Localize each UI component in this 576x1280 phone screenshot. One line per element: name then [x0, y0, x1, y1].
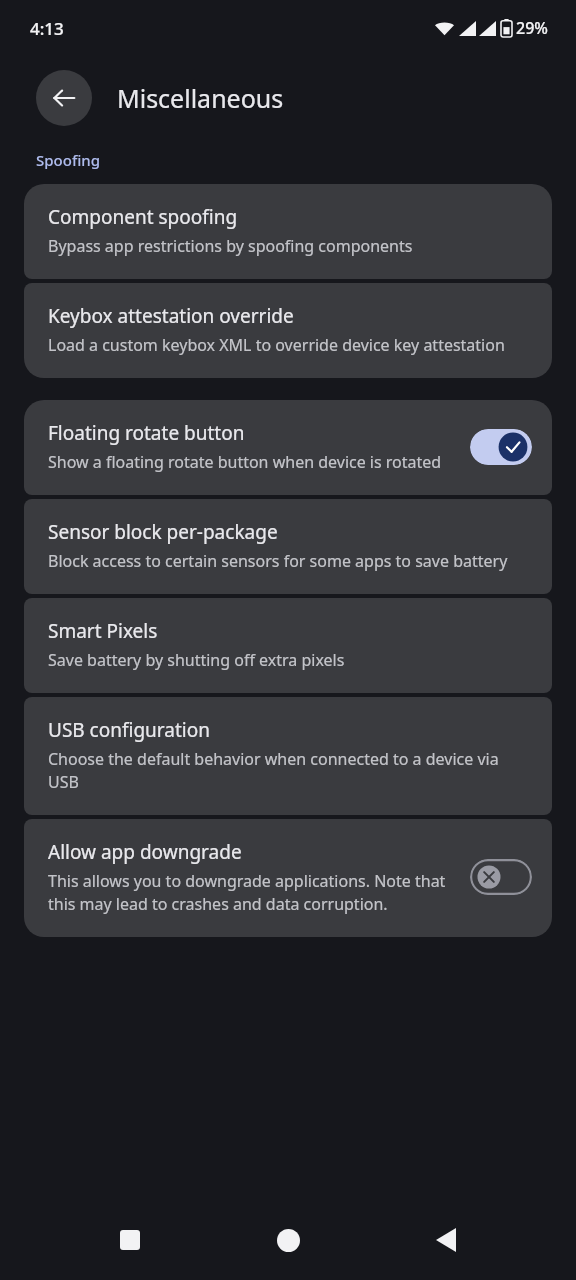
- button[interactable]: Allow app downgrade: [24, 819, 552, 937]
- staticText: Bypass app restrictions by spoofing comp…: [48, 235, 413, 257]
- button[interactable]: Home: [260, 1212, 316, 1268]
- button[interactable]: Floating rotate button: [24, 400, 552, 495]
- staticText: 4:13: [30, 17, 64, 40]
- staticText: Choose the default behavior when connect…: [48, 748, 532, 793]
- button[interactable]: Toggle on: [470, 429, 532, 465]
- button[interactable]: Recent apps: [102, 1212, 158, 1268]
- staticText: This allows you to downgrade application…: [48, 870, 458, 915]
- staticText: USB configuration: [48, 717, 210, 743]
- staticText: Load a custom keybox XML to override dev…: [48, 334, 505, 356]
- staticText: Smart Pixels: [48, 618, 158, 644]
- staticText: Keybox attestation override: [48, 303, 294, 329]
- staticText: 29%: [516, 17, 548, 39]
- staticText: Show a floating rotate button when devic…: [48, 451, 442, 473]
- button[interactable]: Smart Pixels: [24, 598, 552, 693]
- staticText: Save battery by shutting off extra pixel…: [48, 649, 345, 671]
- staticText: Sensor block per-package: [48, 519, 278, 545]
- staticText: Block access to certain sensors for some…: [48, 550, 508, 572]
- staticText: Allow app downgrade: [48, 839, 242, 865]
- button[interactable]: Back: [36, 70, 92, 126]
- button[interactable]: Back: [418, 1212, 474, 1268]
- staticText: Component spoofing: [48, 204, 238, 230]
- staticText: Floating rotate button: [48, 420, 245, 446]
- button[interactable]: Component spoofing: [24, 184, 552, 279]
- button[interactable]: USB configuration: [24, 697, 552, 815]
- button[interactable]: Sensor block per-package: [24, 499, 552, 594]
- staticText: Spoofing: [36, 150, 100, 170]
- button[interactable]: Keybox attestation override: [24, 283, 552, 378]
- button[interactable]: Toggle off: [470, 859, 532, 895]
- staticText: Miscellaneous: [117, 81, 284, 115]
